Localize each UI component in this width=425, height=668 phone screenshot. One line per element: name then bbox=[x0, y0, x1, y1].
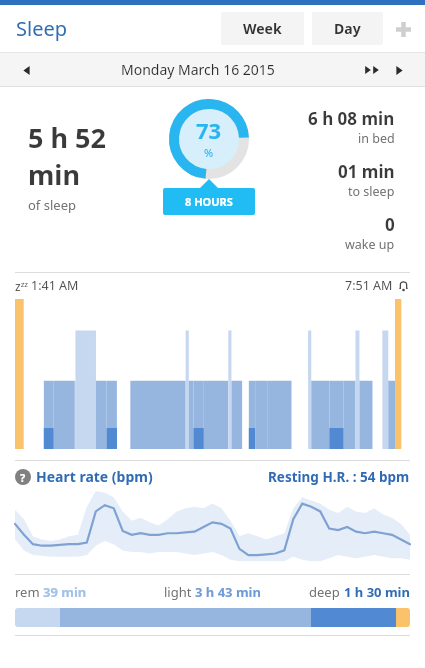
staticText: 39 min bbox=[43, 583, 87, 601]
staticText: Sleep bbox=[16, 15, 67, 42]
staticText: of sleep bbox=[28, 196, 76, 214]
staticText: in bed bbox=[358, 130, 395, 147]
other: Alarm bbox=[397, 279, 410, 292]
staticText: rem bbox=[15, 583, 43, 601]
staticText: 0 bbox=[385, 213, 395, 236]
button[interactable]: 8 HOURS bbox=[163, 188, 255, 215]
staticText: 8 HOURS bbox=[185, 194, 233, 209]
staticText: 5 h 52 bbox=[28, 119, 106, 156]
staticText: 6 h 08 min bbox=[308, 107, 395, 130]
staticText: 73 bbox=[196, 115, 222, 145]
button[interactable]: 01 min bbox=[338, 160, 395, 200]
button[interactable]: Next day bbox=[387, 58, 411, 82]
staticText: 1 h 30 min bbox=[344, 583, 410, 601]
staticText: % bbox=[204, 145, 214, 160]
staticText: Monday March 16 2015 bbox=[121, 60, 275, 79]
staticText: 1:41 AM bbox=[31, 277, 79, 294]
staticText: zᶻᶻ bbox=[15, 278, 28, 294]
staticText: 3 h 43 min bbox=[195, 583, 261, 601]
staticText: deep bbox=[309, 583, 344, 601]
button[interactable] bbox=[15, 608, 410, 627]
staticText: ? bbox=[20, 470, 26, 485]
button[interactable]: Previous day bbox=[14, 58, 38, 82]
staticText: min bbox=[28, 156, 80, 193]
staticText: Day bbox=[334, 19, 361, 38]
staticText: wake up bbox=[345, 236, 395, 253]
button[interactable]: 73 bbox=[169, 99, 249, 179]
staticText: Heart rate (bpm) bbox=[36, 467, 153, 486]
button[interactable]: 0 bbox=[345, 213, 395, 253]
staticText: light bbox=[164, 583, 195, 601]
button[interactable]: Skip forward bbox=[359, 57, 385, 83]
staticText: 01 min bbox=[338, 160, 395, 183]
staticText: to sleep bbox=[348, 183, 395, 200]
button[interactable]: 5 h 52 bbox=[28, 119, 146, 214]
button[interactable]: Add bbox=[391, 17, 415, 41]
button[interactable]: 6 h 08 min bbox=[308, 107, 395, 147]
staticText: Week bbox=[243, 19, 282, 38]
button[interactable] bbox=[15, 299, 410, 449]
button[interactable]: Help bbox=[15, 469, 31, 485]
staticText: Resting H.R. : 54 bpm bbox=[268, 468, 410, 486]
button[interactable]: Day bbox=[312, 12, 383, 45]
staticText: 7:51 AM bbox=[345, 277, 393, 294]
button[interactable] bbox=[15, 488, 410, 566]
button[interactable]: Week bbox=[221, 12, 304, 45]
